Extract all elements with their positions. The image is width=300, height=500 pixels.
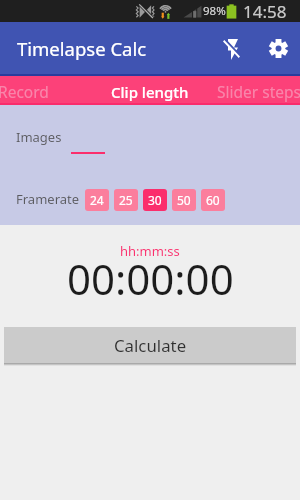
staticText: Framerate [16,190,80,208]
button[interactable]: Slider steps [208,76,300,105]
staticText: Images [16,128,62,146]
button[interactable]: Flash off [209,27,253,71]
button[interactable]: Record [0,76,74,105]
button[interactable]: Calculate [4,327,296,363]
button[interactable]: 24 [85,189,109,211]
staticText: 98% [203,3,226,19]
button[interactable]: 25 [114,189,138,211]
staticText: Calculate [114,334,187,357]
button[interactable]: 50 [172,189,196,211]
button[interactable]: Clip length [95,76,205,105]
button[interactable]: Settings [256,26,300,70]
staticText: Timelapse Calc [17,36,147,61]
staticText: 30 [148,192,162,208]
button[interactable]: 30 [143,189,167,211]
staticText: Record [0,81,49,102]
staticText: 25 [119,192,133,208]
staticText: hh:mm:ss [120,242,180,260]
staticText: 50 [177,192,191,208]
staticText: Clip length [111,82,189,102]
staticText: 60 [206,192,220,208]
staticText: 14:58 [243,0,287,22]
staticText: 00:00:00 [67,250,234,307]
staticText: 24 [90,192,104,208]
staticText: Slider steps [217,81,300,102]
button[interactable]: 60 [201,189,225,211]
button[interactable] [71,138,105,154]
